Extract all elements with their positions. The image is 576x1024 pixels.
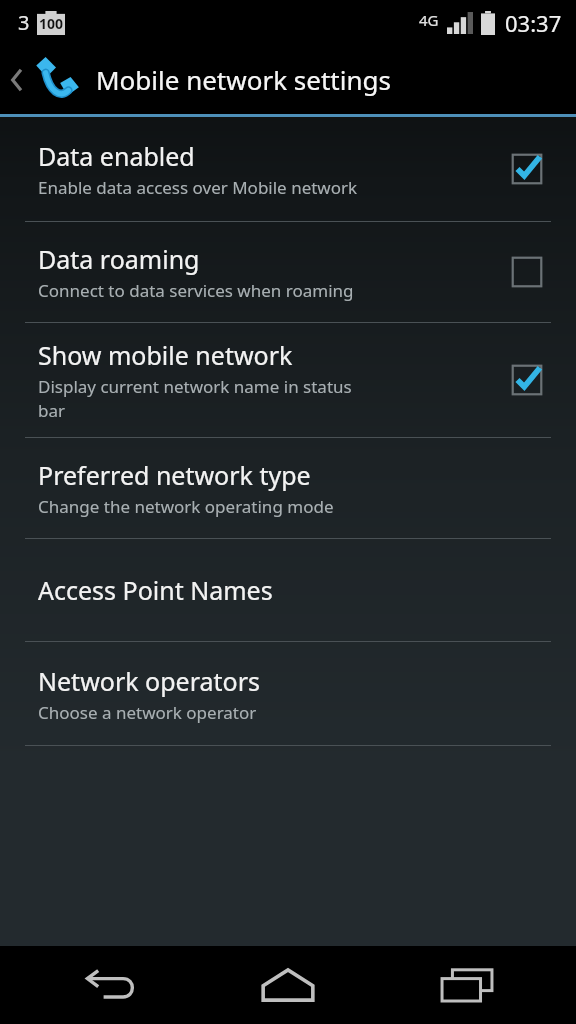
button[interactable]: Back	[39, 946, 179, 1024]
staticText: Change the network operating mode	[38, 495, 334, 518]
button[interactable]: Data roaming	[498, 243, 556, 301]
staticText: Enable data access over Mobile network	[38, 176, 358, 199]
staticText: 03:37	[505, 8, 562, 38]
staticText: Network operators	[38, 664, 260, 698]
staticText: 4G	[419, 10, 439, 30]
button[interactable]: Data roaming	[0, 222, 576, 322]
staticText: Display current network name in status b…	[38, 375, 369, 422]
button[interactable]: Recent apps	[397, 946, 537, 1024]
button[interactable]: Show mobile network	[0, 323, 576, 437]
staticText: Mobile network settings	[96, 62, 391, 97]
button[interactable]: Up	[0, 45, 576, 114]
staticText: Choose a network operator	[38, 701, 257, 724]
staticText: Show mobile network	[38, 338, 293, 372]
button[interactable]: Access Point Names	[0, 539, 576, 641]
button[interactable]: Data enabled	[0, 117, 576, 221]
button[interactable]: Home	[218, 946, 358, 1024]
staticText: 3	[18, 9, 30, 36]
staticText: Preferred network type	[38, 458, 311, 492]
staticText: Data enabled	[38, 139, 195, 173]
staticText: Access Point Names	[38, 573, 273, 607]
staticText: Data roaming	[38, 242, 200, 276]
button[interactable]: Show mobile network	[498, 351, 556, 409]
other: Phone	[30, 54, 82, 106]
staticText: Connect to data services when roaming	[38, 279, 354, 302]
staticText: 100	[39, 14, 64, 33]
button[interactable]: Preferred network type	[0, 438, 576, 538]
button[interactable]: Network operators	[0, 642, 576, 745]
other: Up	[8, 64, 26, 96]
button[interactable]: Data enabled	[498, 140, 556, 198]
